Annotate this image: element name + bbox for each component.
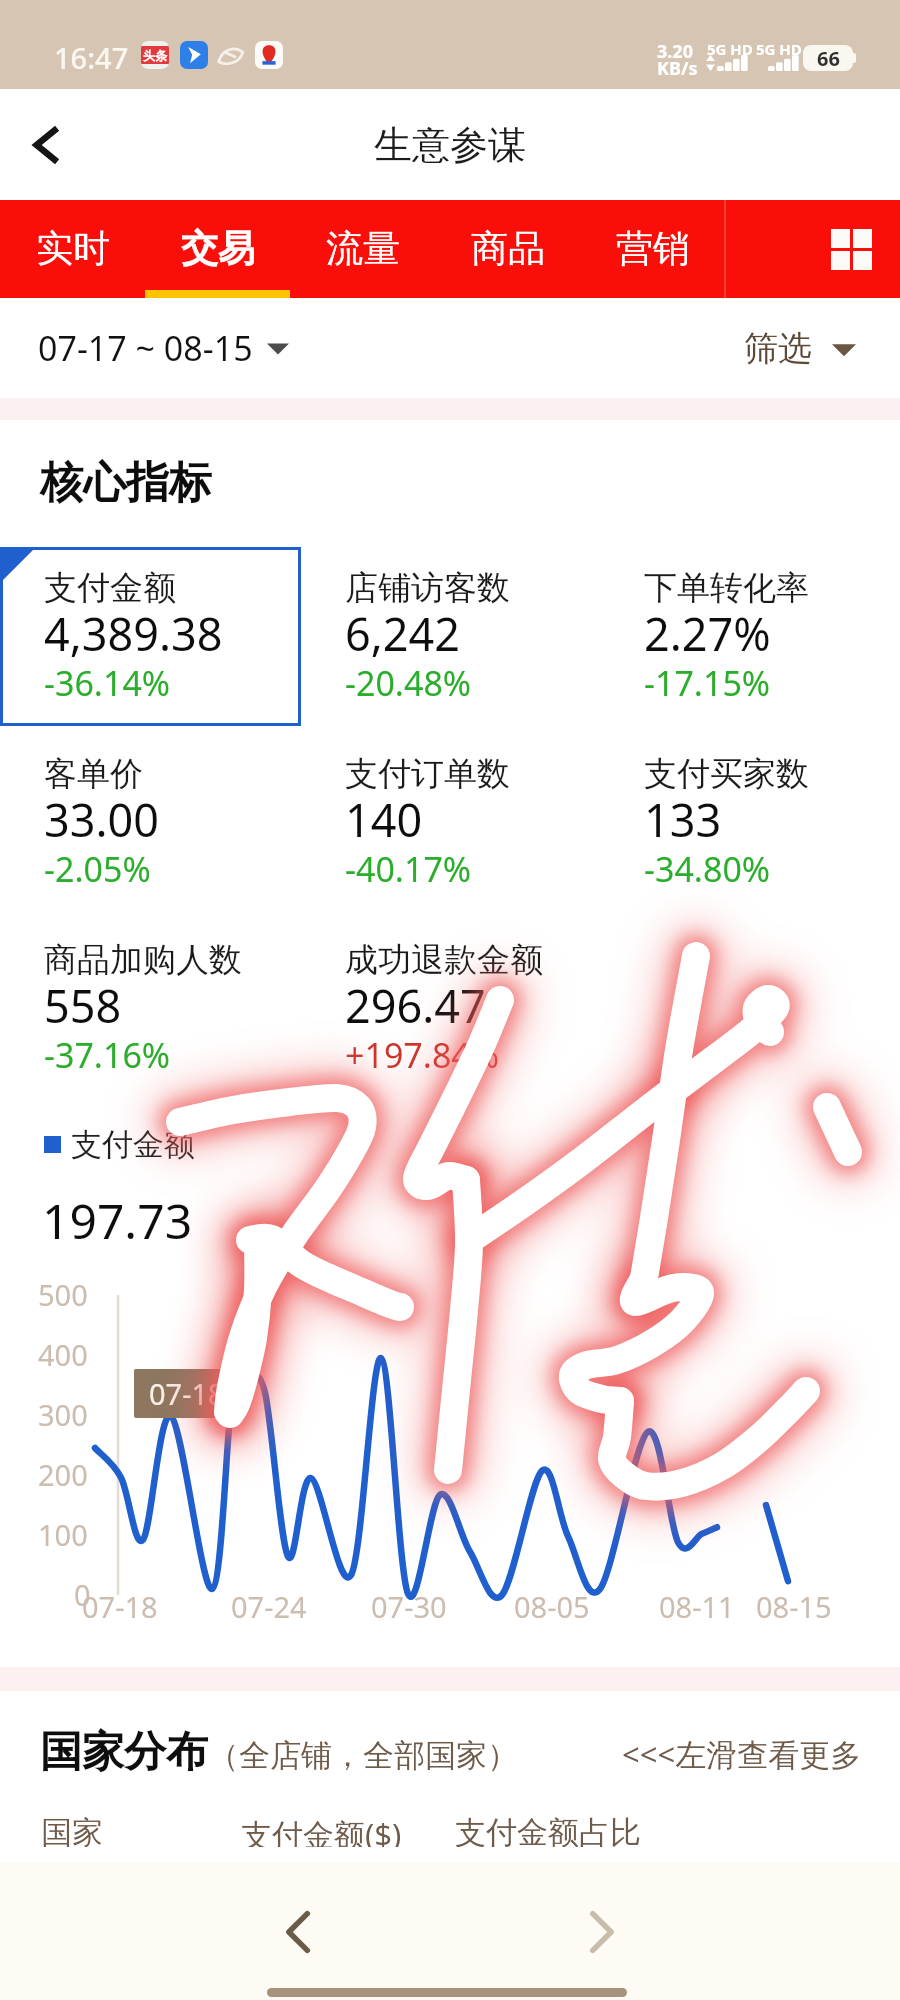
staticText: 营销	[616, 225, 690, 272]
staticText: 133	[644, 789, 722, 850]
staticText: -40.17%	[345, 846, 472, 892]
staticText: 客单价	[44, 753, 143, 795]
staticText: 头条	[143, 48, 167, 63]
staticText: 生意参谋	[374, 121, 526, 169]
staticText: 2.27%	[644, 603, 771, 664]
staticText: 实时	[36, 225, 110, 272]
staticText: -17.15%	[644, 660, 771, 706]
staticText: 筛选	[744, 327, 812, 370]
staticText: 支付订单数	[345, 753, 510, 795]
staticText: 支付金额	[71, 1125, 195, 1164]
button[interactable]: 下单转化率	[600, 547, 900, 726]
button[interactable]: 07-17 ~ 08-15	[38, 325, 289, 371]
button[interactable]: Back	[261, 1894, 337, 1970]
staticText: 07-17 ~ 08-15	[38, 325, 253, 371]
staticText: 支付金额占比	[455, 1813, 641, 1847]
staticText: 558	[44, 975, 122, 1036]
staticText: 296.47	[345, 975, 486, 1036]
staticText: 交易	[181, 225, 255, 272]
button[interactable]: 商品	[435, 200, 580, 298]
staticText: 支付买家数	[644, 753, 809, 795]
staticText: 商品加购人数	[44, 939, 242, 981]
staticText: 197.73	[42, 1188, 193, 1253]
staticText: 4,389.38	[44, 603, 223, 664]
staticText: 5G HD	[756, 39, 802, 59]
staticText: 5G HD	[707, 39, 753, 59]
button[interactable]: Forward	[563, 1894, 639, 1970]
staticText: 国家	[41, 1813, 103, 1847]
staticText: 08-15	[756, 1587, 832, 1626]
staticText: 07-18	[82, 1587, 158, 1626]
button[interactable]: 支付买家数	[600, 733, 900, 912]
staticText: 商品	[471, 225, 545, 272]
button[interactable]: 支付金额	[0, 547, 301, 726]
staticText: -37.16%	[44, 1032, 171, 1078]
button[interactable]: 店铺访客数	[301, 547, 600, 726]
staticText: 08-05	[514, 1587, 590, 1626]
button[interactable]: 交易	[145, 200, 290, 298]
staticText: 33.00	[44, 789, 160, 850]
staticText: 07-18	[149, 1374, 225, 1413]
staticText: 3.20	[657, 39, 693, 64]
staticText: 08-11	[659, 1587, 735, 1626]
button[interactable]: 成功退款金额	[301, 919, 600, 1098]
staticText: 140	[345, 789, 423, 850]
staticText: -34.80%	[644, 846, 771, 892]
staticText: 6,242	[345, 603, 461, 664]
staticText: 支付金额	[44, 567, 176, 609]
staticText: 核心指标	[40, 456, 212, 510]
button[interactable]: 营销	[580, 200, 725, 298]
button[interactable]: 流量	[290, 200, 435, 298]
staticText: 支付金额($)	[241, 1813, 402, 1847]
button[interactable]: 商品加购人数	[0, 919, 301, 1098]
button[interactable]: 筛选	[744, 327, 856, 370]
staticText: 下单转化率	[644, 567, 809, 609]
staticText: 07-30	[371, 1587, 447, 1626]
button[interactable]: More modules	[811, 209, 891, 289]
button[interactable]: Back	[12, 109, 84, 181]
staticText: 500	[38, 1275, 88, 1314]
staticText: 66	[817, 45, 840, 71]
staticText: 流量	[326, 225, 400, 272]
staticText: 成功退款金额	[345, 939, 543, 981]
staticText: 0	[74, 1575, 91, 1614]
staticText: 100	[38, 1515, 88, 1554]
staticText: -20.48%	[345, 660, 472, 706]
button[interactable]: 实时	[0, 200, 145, 298]
staticText: 300	[38, 1395, 88, 1434]
staticText: 国家分布	[40, 1726, 208, 1779]
button[interactable]: 客单价	[0, 733, 301, 912]
staticText: +197.84%	[345, 1032, 500, 1078]
staticText: -2.05%	[44, 846, 151, 892]
button[interactable]: 支付订单数	[301, 733, 600, 912]
staticText: 店铺访客数	[345, 567, 510, 609]
staticText: <<<左滑查看更多	[622, 1733, 862, 1775]
staticText: 400	[38, 1335, 88, 1374]
staticText: KB/s	[657, 56, 698, 81]
staticText: （全店铺，全部国家）	[208, 1736, 518, 1775]
staticText: 200	[38, 1455, 88, 1494]
staticText: 07-24	[231, 1587, 307, 1626]
staticText: 16:47	[54, 38, 129, 77]
staticText: -36.14%	[44, 660, 171, 706]
